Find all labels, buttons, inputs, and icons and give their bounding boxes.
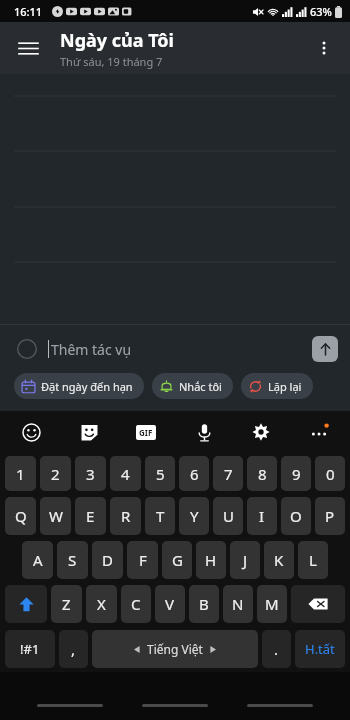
button[interactable]: 9 [281, 456, 311, 491]
staticText: Nhắc tôi [179, 379, 222, 394]
staticText: V [165, 594, 175, 614]
button[interactable]: , [59, 630, 88, 668]
staticText: S [68, 550, 77, 570]
button[interactable]: N [223, 585, 253, 623]
staticText: Thứ sáu, 19 tháng 7 [60, 54, 163, 69]
staticText: Ngày của Tôi [60, 28, 174, 53]
staticText: E [86, 506, 95, 526]
button[interactable]: E [75, 497, 106, 535]
button[interactable]: 6 [179, 456, 209, 491]
button[interactable]: More options [302, 26, 346, 70]
staticText: Lặp lại [268, 379, 302, 394]
staticText: N [232, 594, 244, 614]
button[interactable]: A [22, 541, 53, 579]
staticText: D [102, 550, 113, 570]
button[interactable]: F [127, 541, 158, 579]
button[interactable]: Navigation [245, 698, 315, 712]
button[interactable]: . [262, 630, 291, 668]
button[interactable]: 0 [315, 456, 345, 491]
button[interactable]: 8 [247, 456, 277, 491]
button[interactable]: R [110, 497, 141, 535]
button[interactable]: Backspace [291, 585, 345, 623]
staticText: U [223, 506, 234, 526]
button[interactable]: Y [179, 497, 209, 535]
button[interactable]: 2 [40, 456, 71, 491]
staticText: Y [190, 506, 199, 526]
staticText: T [156, 506, 165, 526]
staticText: 5 [156, 464, 165, 484]
staticText: O [290, 506, 302, 526]
staticText: !#1 [20, 640, 40, 658]
staticText: 1 [16, 464, 25, 484]
staticText: P [325, 506, 335, 526]
button[interactable]: J [230, 541, 260, 579]
button[interactable]: W [40, 497, 71, 535]
staticText: G [172, 550, 183, 570]
staticText: K [274, 550, 284, 570]
staticText: 0 [326, 464, 335, 484]
button[interactable]: X [86, 585, 117, 623]
staticText: 2 [51, 464, 60, 484]
button[interactable]: 5 [145, 456, 175, 491]
button[interactable]: T [145, 497, 175, 535]
button[interactable]: Voice input [187, 415, 221, 449]
button[interactable]: H.tất [295, 630, 345, 668]
staticText: GIF [139, 427, 153, 438]
staticText: X [97, 594, 106, 614]
button[interactable]: Tiếng Việt [92, 630, 258, 668]
button[interactable]: Thêm tác vụ [0, 325, 350, 373]
staticText: F [139, 550, 147, 570]
button[interactable]: S [57, 541, 88, 579]
button[interactable]: V [155, 585, 185, 623]
staticText: Tiếng Việt [147, 641, 203, 657]
button[interactable]: G [162, 541, 192, 579]
staticText: Thêm tác vụ [51, 340, 132, 359]
button[interactable]: O [281, 497, 311, 535]
button[interactable]: D [92, 541, 123, 579]
button[interactable]: Z [51, 585, 82, 623]
button[interactable]: B [189, 585, 219, 623]
button[interactable]: Navigation [140, 698, 210, 712]
button[interactable]: Menu [6, 26, 50, 70]
button[interactable]: L [298, 541, 328, 579]
button[interactable]: Settings [244, 415, 278, 449]
button[interactable]: Nhắc tôi [152, 373, 233, 399]
button[interactable]: K [264, 541, 294, 579]
staticText: Z [62, 594, 71, 614]
button[interactable]: Emoji [14, 415, 48, 449]
button[interactable]: C [121, 585, 151, 623]
button[interactable]: Stickers [72, 415, 106, 449]
button[interactable]: 7 [213, 456, 243, 491]
button[interactable]: Send [312, 336, 338, 362]
staticText: 9 [292, 464, 301, 484]
staticText: J [243, 550, 248, 570]
button[interactable]: P [315, 497, 345, 535]
staticText: Đặt ngày đến hạn [41, 379, 133, 394]
staticText: Q [15, 506, 27, 526]
button[interactable]: M [257, 585, 287, 623]
staticText: 4 [121, 464, 130, 484]
staticText: 3 [86, 464, 95, 484]
staticText: L [309, 550, 317, 570]
button[interactable]: I [247, 497, 277, 535]
button[interactable]: 1 [5, 456, 36, 491]
staticText: , [71, 639, 76, 659]
staticText: 8 [258, 464, 267, 484]
staticText: H.tất [305, 640, 335, 658]
staticText: I [259, 506, 265, 526]
button[interactable]: Shift [5, 585, 47, 623]
button[interactable]: !#1 [5, 630, 55, 668]
button[interactable]: 3 [75, 456, 106, 491]
button[interactable]: Lặp lại [241, 373, 313, 399]
button[interactable]: Q [5, 497, 36, 535]
button[interactable]: Đặt ngày đến hạn [14, 373, 144, 399]
button[interactable]: 4 [110, 456, 141, 491]
button[interactable]: U [213, 497, 243, 535]
staticText: W [49, 506, 63, 526]
button[interactable]: H [196, 541, 226, 579]
button[interactable]: More [302, 415, 336, 449]
button[interactable]: Navigation [35, 698, 105, 712]
staticText: A [33, 550, 43, 570]
button[interactable]: GIF [129, 415, 163, 449]
staticText: H [205, 550, 217, 570]
